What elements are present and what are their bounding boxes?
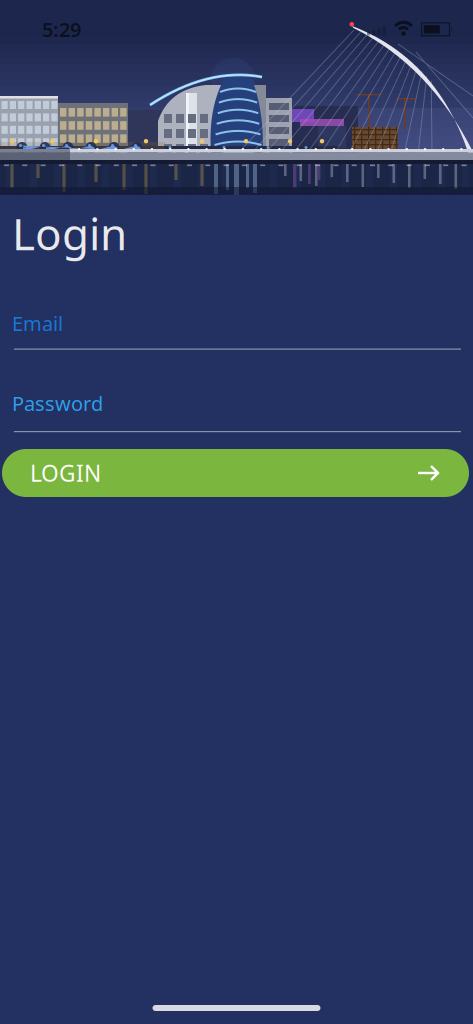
staticText: Password (12, 390, 103, 417)
staticText: Email (12, 310, 63, 337)
button[interactable]: Password (12, 390, 461, 435)
button[interactable]: LOGIN (2, 449, 469, 497)
staticText: LOGIN (30, 458, 101, 488)
staticText: 5:29 (42, 16, 81, 43)
button[interactable]: Email (12, 310, 461, 354)
staticText: Login (12, 204, 127, 262)
